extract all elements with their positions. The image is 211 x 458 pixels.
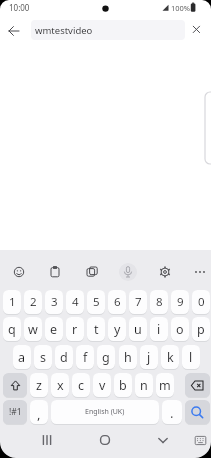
staticText: i bbox=[157, 321, 161, 338]
staticText: 2 bbox=[30, 294, 37, 310]
staticText: q bbox=[8, 321, 16, 338]
button[interactable]: i bbox=[150, 317, 168, 341]
button[interactable] bbox=[190, 23, 203, 36]
staticText: b bbox=[119, 377, 127, 394]
staticText: n bbox=[140, 377, 148, 394]
staticText: j bbox=[147, 349, 151, 366]
staticText: f bbox=[83, 349, 88, 366]
button[interactable]: 1 bbox=[3, 290, 21, 314]
staticText: 7 bbox=[135, 294, 142, 310]
staticText: 100% bbox=[171, 3, 191, 13]
staticText: c bbox=[78, 377, 85, 394]
button[interactable]: n bbox=[135, 373, 153, 397]
staticText: s bbox=[40, 349, 46, 366]
button[interactable]: 5 bbox=[87, 290, 105, 314]
button[interactable]: wmtestvideo bbox=[31, 20, 185, 40]
button[interactable]: 9 bbox=[171, 290, 189, 314]
staticText: English (UK) bbox=[85, 407, 125, 417]
button[interactable]: f bbox=[76, 345, 94, 369]
button[interactable]: 6 bbox=[108, 290, 126, 314]
button[interactable]: z bbox=[30, 373, 48, 397]
button[interactable]: 4 bbox=[66, 290, 84, 314]
staticText: . bbox=[170, 404, 174, 422]
button[interactable] bbox=[185, 373, 210, 397]
staticText: o bbox=[176, 321, 184, 338]
staticText: 1 bbox=[9, 294, 16, 310]
staticText: y bbox=[114, 321, 121, 338]
staticText: d bbox=[60, 349, 68, 366]
button[interactable]: !#1 bbox=[3, 400, 27, 424]
staticText: z bbox=[36, 377, 42, 394]
staticText: 8 bbox=[156, 294, 163, 310]
staticText: 4 bbox=[72, 294, 79, 310]
button[interactable] bbox=[97, 432, 113, 448]
button[interactable]: x bbox=[51, 373, 69, 397]
button[interactable] bbox=[39, 432, 55, 448]
button[interactable]: 0 bbox=[192, 290, 210, 314]
staticText: , bbox=[37, 405, 41, 423]
button[interactable] bbox=[119, 263, 137, 281]
button[interactable]: p bbox=[192, 317, 210, 341]
button[interactable]: d bbox=[55, 345, 73, 369]
button[interactable]: m bbox=[156, 373, 174, 397]
staticText: wmtestvideo bbox=[35, 24, 93, 37]
staticText: l bbox=[189, 349, 193, 366]
staticText: 10:00 bbox=[9, 2, 30, 13]
button[interactable]: q bbox=[3, 317, 21, 341]
button[interactable]: 7 bbox=[129, 290, 147, 314]
button[interactable]: 3 bbox=[45, 290, 63, 314]
staticText: u bbox=[134, 321, 142, 338]
button[interactable]: l bbox=[182, 345, 200, 369]
button[interactable]: e bbox=[45, 317, 63, 341]
button[interactable]: h bbox=[119, 345, 137, 369]
button[interactable]: b bbox=[114, 373, 132, 397]
button[interactable]: a bbox=[13, 345, 31, 369]
staticText: g bbox=[102, 349, 110, 366]
button[interactable]: v bbox=[93, 373, 111, 397]
button[interactable]: t bbox=[87, 317, 105, 341]
button[interactable]: k bbox=[161, 345, 179, 369]
button[interactable] bbox=[6, 23, 22, 39]
staticText: 3 bbox=[51, 294, 58, 310]
staticText: a bbox=[18, 349, 26, 366]
staticText: 9 bbox=[177, 294, 184, 310]
staticText: 0 bbox=[198, 294, 205, 310]
button[interactable]: w bbox=[24, 317, 42, 341]
staticText: m bbox=[159, 377, 171, 394]
button[interactable]: u bbox=[129, 317, 147, 341]
button[interactable]: . bbox=[162, 400, 182, 424]
staticText: h bbox=[124, 349, 132, 366]
button[interactable] bbox=[47, 264, 63, 280]
staticText: t bbox=[94, 321, 99, 338]
button[interactable]: g bbox=[97, 345, 115, 369]
button[interactable] bbox=[185, 400, 210, 424]
button[interactable]: , bbox=[30, 400, 48, 424]
button[interactable] bbox=[3, 373, 27, 397]
staticText: e bbox=[50, 321, 58, 338]
button[interactable]: English (UK) bbox=[51, 400, 159, 424]
staticText: x bbox=[57, 377, 64, 394]
staticText: p bbox=[197, 321, 205, 338]
button[interactable]: y bbox=[108, 317, 126, 341]
button[interactable] bbox=[192, 264, 208, 280]
staticText: 5 bbox=[93, 294, 100, 310]
staticText: !#1 bbox=[9, 406, 22, 418]
button[interactable] bbox=[157, 264, 173, 280]
button[interactable]: j bbox=[140, 345, 158, 369]
button[interactable]: o bbox=[171, 317, 189, 341]
button[interactable]: c bbox=[72, 373, 90, 397]
button[interactable] bbox=[84, 264, 100, 280]
button[interactable]: 2 bbox=[24, 290, 42, 314]
button[interactable]: s bbox=[34, 345, 52, 369]
button[interactable] bbox=[155, 432, 171, 448]
button[interactable] bbox=[120, 264, 136, 280]
staticText: r bbox=[72, 321, 78, 338]
button[interactable] bbox=[193, 433, 208, 448]
button[interactable] bbox=[11, 264, 27, 280]
staticText: v bbox=[99, 377, 106, 394]
button[interactable]: 8 bbox=[150, 290, 168, 314]
staticText: 6 bbox=[114, 294, 121, 310]
button[interactable]: r bbox=[66, 317, 84, 341]
staticText: k bbox=[167, 349, 174, 366]
staticText: w bbox=[28, 321, 38, 338]
